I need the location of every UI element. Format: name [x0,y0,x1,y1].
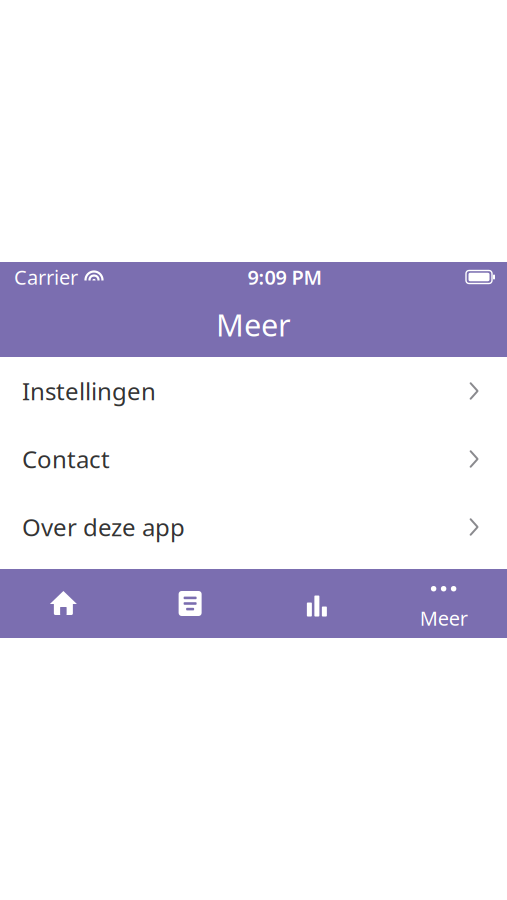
button[interactable]: Instellingen [0,357,507,425]
button[interactable]: Home [0,569,127,638]
staticText: Over deze app [22,511,185,543]
staticText: Contact [22,443,110,475]
staticText: Carrier [14,264,78,290]
staticText: 9:09 PM [247,264,322,290]
button[interactable]: Contact [0,425,507,493]
button[interactable]: Over deze app [0,493,507,561]
staticText: Meer [216,304,291,345]
button[interactable]: Meer [380,569,507,638]
staticText: Instellingen [22,375,156,407]
button[interactable]: Statistieken [253,569,380,638]
staticText: Meer [420,605,468,631]
button[interactable]: Artikelen [127,569,254,638]
